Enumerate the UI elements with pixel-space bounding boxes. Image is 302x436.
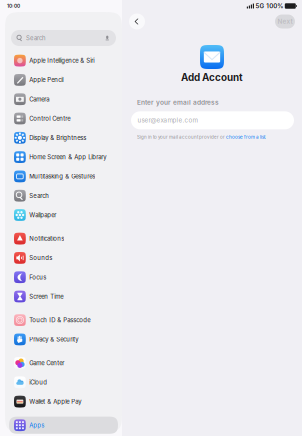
- staticText: Camera: [29, 96, 49, 103]
- button[interactable]: Sounds: [9, 249, 118, 266]
- staticText: Add Account: [181, 71, 243, 83]
- button[interactable]: Privacy & Security: [9, 331, 118, 348]
- button[interactable]: Touch ID & Passcode: [9, 311, 118, 329]
- staticText: 10:00: [7, 3, 20, 9]
- staticText: Apple Pencil: [29, 76, 63, 84]
- button[interactable]: Search: [5, 12, 122, 46]
- button[interactable]: Apps: [9, 417, 118, 434]
- staticText: 5G: [256, 2, 265, 10]
- button[interactable]: Next: [275, 14, 295, 28]
- button[interactable]: Control Centre: [9, 110, 118, 127]
- button[interactable]: Wallet & Apple Pay: [9, 393, 118, 410]
- staticText: Apps: [29, 422, 44, 429]
- button[interactable]: Apple Intelligence & Siri: [9, 52, 118, 69]
- staticText: Wallpaper: [29, 211, 56, 219]
- staticText: Sign in to your mail account provider or: [137, 134, 226, 140]
- button[interactable]: Search: [9, 187, 118, 204]
- staticText: choose from a list.: [226, 134, 266, 140]
- button[interactable]: Camera: [9, 91, 118, 108]
- staticText: Search: [26, 34, 46, 42]
- staticText: Search: [29, 192, 49, 199]
- button[interactable]: Apple Pencil: [9, 71, 118, 88]
- button[interactable]: Wallpaper: [9, 206, 118, 224]
- staticText: Next: [277, 18, 292, 25]
- staticText: Wallet & Apple Pay: [29, 398, 81, 405]
- staticText: 100%: [266, 2, 283, 10]
- staticText: Multitasking & Gestures: [29, 173, 95, 180]
- button[interactable]: Screen Time: [9, 288, 118, 305]
- staticText: Control Centre: [29, 115, 70, 122]
- staticText: Display & Brightness: [29, 134, 86, 141]
- button[interactable]: Display & Brightness: [9, 129, 118, 146]
- button[interactable]: Focus: [9, 269, 118, 286]
- staticText: Touch ID & Passcode: [29, 316, 90, 324]
- staticText: iCloud: [29, 379, 47, 386]
- button[interactable]: Multitasking & Gestures: [9, 168, 118, 185]
- staticText: Home Screen & App Library: [29, 153, 106, 161]
- staticText: Sounds: [29, 254, 52, 262]
- staticText: Game Center: [29, 359, 64, 367]
- staticText: Privacy & Security: [29, 336, 78, 343]
- button[interactable]: iCloud: [9, 374, 118, 391]
- button[interactable]: Notifications: [9, 230, 118, 247]
- button[interactable]: Game Center: [9, 354, 118, 372]
- staticText: Enter your email address: [137, 98, 219, 106]
- staticText: Notifications: [29, 235, 64, 242]
- staticText: Focus: [29, 274, 46, 281]
- button[interactable]: Back: [129, 13, 145, 29]
- staticText: user@example.com: [137, 117, 197, 124]
- staticText: Apple Intelligence & Siri: [29, 57, 94, 64]
- staticText: Screen Time: [29, 293, 63, 300]
- button[interactable]: choose from a list.: [226, 134, 266, 140]
- button[interactable]: Home Screen & App Library: [9, 148, 118, 166]
